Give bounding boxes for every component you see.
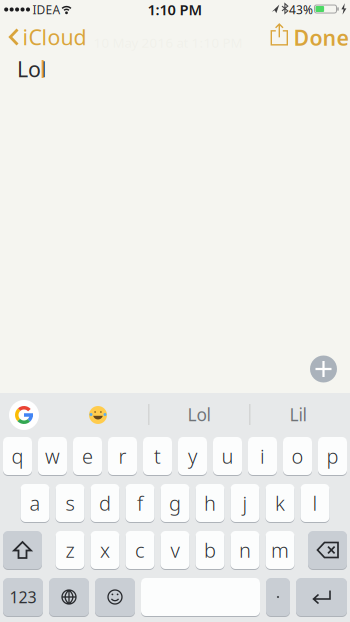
button[interactable] bbox=[310, 355, 337, 382]
button[interactable] bbox=[265, 21, 293, 49]
staticText: 1:10 PM bbox=[147, 0, 202, 19]
button[interactable]: j bbox=[230, 484, 259, 522]
button[interactable] bbox=[266, 578, 290, 616]
button[interactable] bbox=[3, 531, 42, 569]
button[interactable]: n bbox=[230, 531, 259, 569]
button[interactable]: Lol bbox=[154, 399, 244, 429]
button[interactable] bbox=[95, 578, 135, 616]
button[interactable]: r bbox=[108, 437, 137, 475]
button[interactable]: k bbox=[265, 484, 294, 522]
button[interactable]: Done bbox=[286, 23, 350, 51]
staticText: e bbox=[82, 443, 93, 469]
staticText: y bbox=[188, 443, 197, 469]
button[interactable]: o bbox=[283, 437, 312, 475]
button[interactable]: e bbox=[73, 437, 102, 475]
button[interactable]: c bbox=[125, 531, 154, 569]
button[interactable]: d bbox=[90, 484, 119, 522]
button[interactable]: Lil bbox=[253, 399, 343, 429]
staticText: j bbox=[242, 490, 247, 516]
button[interactable]: m bbox=[265, 531, 294, 569]
staticText: s bbox=[65, 490, 74, 516]
staticText: k bbox=[275, 490, 285, 516]
staticText: f bbox=[137, 490, 143, 516]
staticText: 43% bbox=[289, 1, 313, 17]
button[interactable]: t bbox=[143, 437, 172, 475]
staticText: Lol bbox=[17, 55, 47, 83]
staticText: o bbox=[291, 443, 303, 469]
staticText: t bbox=[154, 443, 161, 469]
button[interactable]: b bbox=[195, 531, 224, 569]
button[interactable]: f bbox=[125, 484, 154, 522]
button[interactable] bbox=[308, 531, 347, 569]
staticText: IDEA bbox=[32, 1, 60, 17]
staticText: b bbox=[204, 537, 216, 563]
staticText: u bbox=[221, 443, 233, 469]
staticText: m bbox=[271, 537, 289, 563]
staticText: p bbox=[326, 443, 338, 469]
button[interactable]: z bbox=[55, 531, 84, 569]
button[interactable]: iCloud bbox=[8, 22, 118, 52]
staticText: h bbox=[204, 490, 216, 516]
staticText: Lol bbox=[187, 403, 210, 426]
button[interactable]: i bbox=[248, 437, 277, 475]
staticText: r bbox=[118, 443, 126, 469]
staticText: Lil bbox=[289, 403, 306, 426]
staticText: d bbox=[99, 490, 111, 516]
button[interactable] bbox=[9, 400, 39, 430]
button[interactable] bbox=[296, 578, 347, 616]
staticText: i bbox=[260, 443, 265, 469]
button[interactable] bbox=[49, 578, 89, 616]
staticText: n bbox=[239, 537, 251, 563]
staticText: c bbox=[135, 537, 145, 563]
staticText: l bbox=[312, 490, 317, 516]
staticText: 123 bbox=[9, 586, 36, 608]
staticText: x bbox=[100, 537, 110, 563]
staticText: a bbox=[29, 490, 40, 516]
button[interactable]: v bbox=[160, 531, 189, 569]
button[interactable]: 123 bbox=[3, 578, 43, 616]
button[interactable] bbox=[89, 406, 107, 424]
button[interactable]: a bbox=[20, 484, 49, 522]
staticText: q bbox=[11, 443, 23, 469]
staticText: Done bbox=[293, 23, 348, 52]
button[interactable]: u bbox=[213, 437, 242, 475]
staticText: v bbox=[170, 537, 179, 563]
button[interactable]: x bbox=[90, 531, 119, 569]
staticText: g bbox=[169, 490, 181, 516]
staticText: z bbox=[65, 537, 74, 563]
button[interactable]: g bbox=[160, 484, 189, 522]
button[interactable]: w bbox=[38, 437, 67, 475]
button[interactable]: h bbox=[195, 484, 224, 522]
button[interactable]: q bbox=[3, 437, 32, 475]
staticText: iCloud bbox=[22, 23, 86, 51]
button[interactable]: l bbox=[300, 484, 329, 522]
button[interactable]: y bbox=[178, 437, 207, 475]
button[interactable]: p bbox=[318, 437, 347, 475]
staticText: w bbox=[45, 443, 60, 469]
button[interactable]: s bbox=[55, 484, 84, 522]
